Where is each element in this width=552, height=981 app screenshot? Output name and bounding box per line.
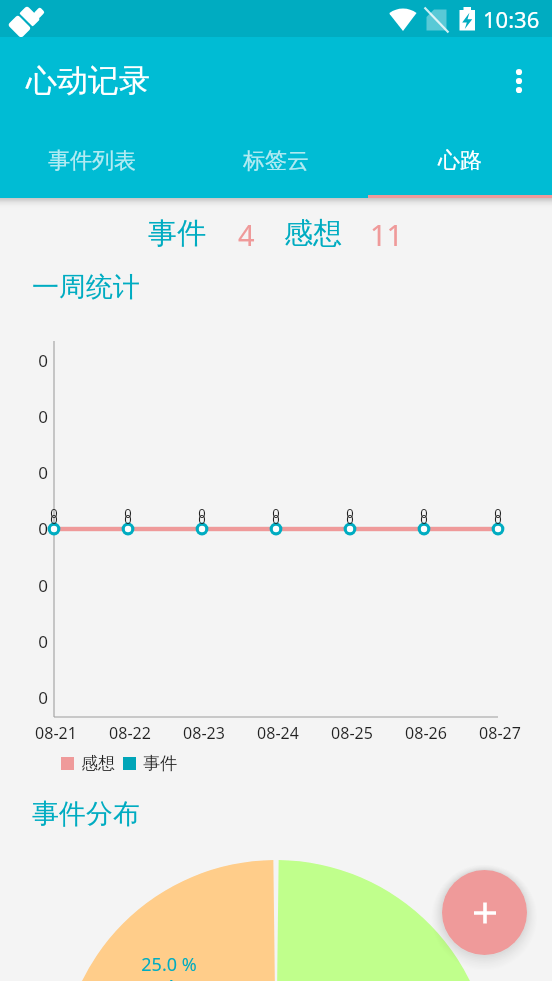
- staticText: 08-21: [35, 722, 77, 744]
- staticText: 0: [38, 517, 48, 540]
- staticText: 0: [38, 405, 48, 428]
- staticText: 25.0 %: [141, 952, 197, 977]
- staticText: 4: [238, 215, 255, 251]
- staticText: 0: [124, 510, 132, 528]
- staticText: 感想: [81, 753, 115, 774]
- staticText: 事件列表: [48, 147, 136, 175]
- button[interactable]: 心路: [368, 123, 552, 198]
- staticText: 10:36: [483, 4, 540, 34]
- staticText: 4: [164, 974, 175, 981]
- staticText: 0: [272, 510, 280, 528]
- button[interactable]: Add: [442, 870, 527, 955]
- staticText: 事件分布: [32, 797, 140, 831]
- staticText: 心路: [438, 147, 482, 175]
- staticText: 标签云: [243, 147, 309, 175]
- staticText: 0: [494, 510, 502, 528]
- staticText: 08-25: [331, 722, 373, 744]
- staticText: 0: [38, 686, 48, 709]
- staticText: 心动记录: [26, 61, 150, 100]
- staticText: 事件: [148, 215, 206, 251]
- staticText: 0: [346, 510, 354, 528]
- button[interactable]: 事件列表: [0, 123, 184, 198]
- staticText: 0: [50, 510, 58, 528]
- staticText: 0: [38, 349, 48, 372]
- staticText: 08-27: [479, 722, 521, 744]
- staticText: 感想: [284, 215, 342, 251]
- staticText: 08-23: [183, 722, 225, 744]
- staticText: 一周统计: [32, 270, 140, 304]
- button[interactable]: More options: [496, 37, 552, 123]
- staticText: 事件: [143, 753, 177, 774]
- staticText: 11: [370, 215, 404, 251]
- staticText: 0: [124, 504, 132, 522]
- staticText: 0: [198, 510, 206, 528]
- staticText: 0: [420, 504, 428, 522]
- staticText: 0: [494, 504, 502, 522]
- staticText: 0: [38, 574, 48, 597]
- staticText: 0: [198, 504, 206, 522]
- staticText: 0: [272, 504, 280, 522]
- staticText: 08-24: [257, 722, 299, 744]
- staticText: 08-26: [405, 722, 447, 744]
- staticText: 08-22: [109, 722, 151, 744]
- staticText: 0: [38, 630, 48, 653]
- staticText: 0: [420, 510, 428, 528]
- button[interactable]: 标签云: [184, 123, 368, 198]
- staticText: 0: [38, 461, 48, 484]
- staticText: 0: [346, 504, 354, 522]
- staticText: 0: [50, 504, 58, 522]
